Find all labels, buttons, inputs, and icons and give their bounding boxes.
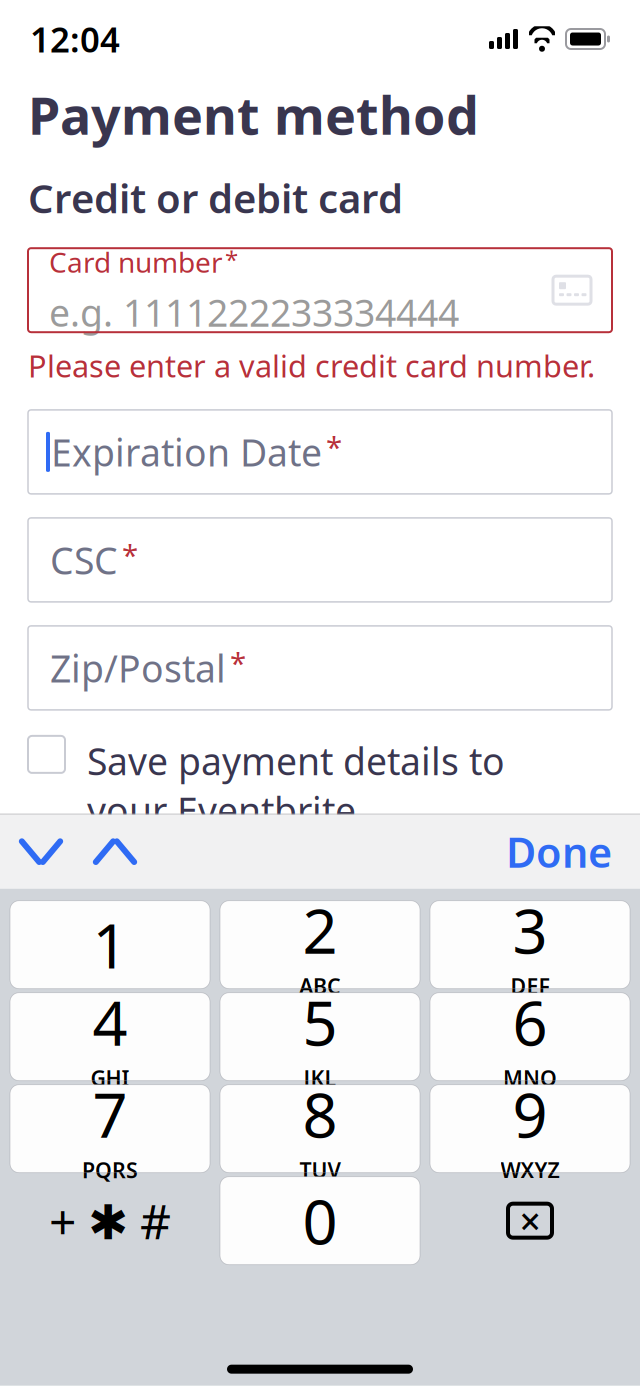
staticText: JKL [303, 1064, 336, 1092]
staticText: ABC [299, 972, 341, 1000]
staticText: Card number [49, 243, 223, 280]
button[interactable]: 2 [220, 901, 420, 989]
staticText: 12:04 [30, 16, 120, 62]
staticText: Expiration Date [51, 427, 322, 477]
staticText: 6 [512, 981, 547, 1063]
staticText: 2 [302, 889, 337, 971]
button[interactable]: 5 [220, 993, 420, 1081]
staticText: * [225, 243, 238, 275]
staticText: MNO [503, 1064, 557, 1092]
staticText: 7 [92, 1073, 127, 1155]
staticText: DEF [510, 972, 549, 1000]
staticText: 3 [512, 889, 547, 971]
button[interactable]: Done [488, 815, 630, 889]
staticText: 8 [302, 1073, 337, 1155]
staticText: 0 [302, 1180, 337, 1261]
button[interactable]: 8 [220, 1085, 420, 1173]
staticText: Done [506, 824, 612, 879]
button[interactable]: Zip/Postal [28, 626, 612, 710]
staticText: GHI [90, 1064, 129, 1092]
button[interactable]: 3 [430, 901, 630, 989]
button[interactable]: Previous field [4, 815, 78, 889]
staticText: PQRS [82, 1156, 138, 1184]
button[interactable]: 1 [10, 901, 210, 989]
staticText: Payment method [28, 80, 479, 149]
button[interactable]: Delete [430, 1177, 630, 1265]
staticText: * [122, 535, 138, 574]
button[interactable]: 7 [10, 1085, 210, 1173]
staticText: * [326, 427, 342, 466]
staticText: CSC [50, 535, 118, 585]
button[interactable]: 4 [10, 993, 210, 1081]
button[interactable]: Next field [78, 815, 152, 889]
staticText: Credit or debit card [28, 171, 403, 224]
button[interactable]: 9 [430, 1085, 630, 1173]
staticText: Please enter a valid credit card number. [28, 345, 595, 386]
staticText: WXYZ [500, 1156, 559, 1184]
staticText: 5 [302, 981, 337, 1063]
staticText: Zip/Postal [50, 643, 226, 693]
button[interactable]: Expiration Date [28, 410, 612, 494]
button[interactable]: Save payment details to your Eventbrite [28, 736, 612, 768]
staticText: 9 [512, 1073, 547, 1155]
staticText: * [230, 643, 246, 682]
staticText: Save payment details to your Eventbrite [87, 736, 505, 835]
staticText: 4 [92, 981, 127, 1063]
button[interactable]: Card number [28, 248, 612, 332]
staticText: + ✱ # [49, 1189, 171, 1252]
button[interactable]: 0 [220, 1177, 420, 1265]
staticText: × [519, 1196, 540, 1245]
button[interactable]: 6 [430, 993, 630, 1081]
button[interactable]: CSC [28, 518, 612, 602]
staticText: e.g. 1111222233334444 [49, 287, 459, 337]
button[interactable]: Symbols [10, 1177, 210, 1265]
staticText: 1 [92, 904, 127, 985]
staticText: TUV [299, 1156, 340, 1184]
